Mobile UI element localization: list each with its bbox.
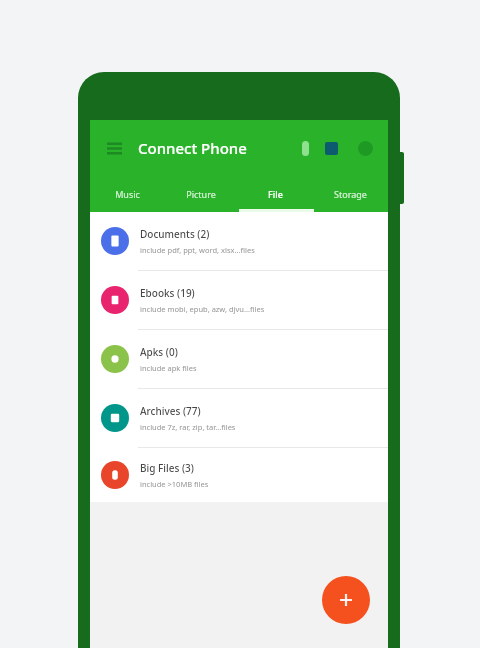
button[interactable]: Menu <box>100 134 128 162</box>
staticText: include apk files <box>140 363 197 373</box>
button[interactable]: More options <box>352 135 378 161</box>
staticText: File <box>268 188 283 200</box>
button[interactable]: Apks (0) <box>90 330 388 388</box>
staticText: Connect Phone <box>138 138 247 158</box>
staticText: include mobi, epub, azw, djvu...files <box>140 304 265 314</box>
button[interactable]: Big Files (3) <box>90 448 388 502</box>
button[interactable]: Ebooks (19) <box>90 271 388 329</box>
staticText: Apks (0) <box>140 345 178 359</box>
staticText: include pdf, ppt, word, xlsx...files <box>140 245 255 255</box>
button[interactable]: Picture <box>164 176 238 212</box>
staticText: Storage <box>334 188 367 200</box>
staticText: Documents (2) <box>140 227 210 241</box>
staticText: include 7z, rar, zip, tar...files <box>140 422 236 432</box>
button[interactable]: Archives (77) <box>90 389 388 447</box>
button[interactable]: Search <box>292 135 318 161</box>
button[interactable]: File <box>238 176 313 212</box>
button[interactable]: Add <box>322 576 370 624</box>
staticText: Music <box>115 188 140 200</box>
button[interactable]: Documents (2) <box>90 212 388 270</box>
staticText: Ebooks (19) <box>140 286 195 300</box>
staticText: include >10MB files <box>140 479 209 489</box>
staticText: Picture <box>186 188 216 200</box>
staticText: Big Files (3) <box>140 461 194 475</box>
button[interactable]: Music <box>90 176 164 212</box>
staticText: Archives (77) <box>140 404 201 418</box>
button[interactable]: Storage <box>313 176 388 212</box>
button[interactable]: Transfer <box>318 135 344 161</box>
